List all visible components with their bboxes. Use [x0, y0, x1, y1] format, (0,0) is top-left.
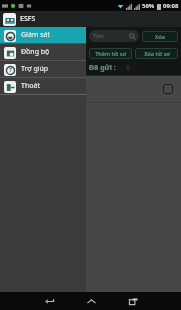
button[interactable]: Back	[41, 293, 57, 309]
button[interactable]: Recents	[125, 293, 141, 309]
staticText: Xóa hồ sơ	[144, 50, 170, 57]
staticText: ?	[9, 66, 12, 74]
button[interactable]: Xóa	[142, 31, 178, 42]
button[interactable]: Đồng bộ	[0, 44, 86, 60]
staticText: Tìm	[93, 32, 104, 40]
button[interactable]: Xóa hồ sơ	[135, 48, 178, 59]
staticText: Giám sát	[21, 30, 51, 40]
button[interactable]: Open navigation drawer	[3, 13, 16, 26]
button[interactable]: ?	[0, 61, 86, 77]
staticText: Trợ giúp	[21, 64, 49, 74]
button[interactable]: Select item	[0, 76, 181, 102]
button[interactable]: Tìm	[89, 30, 139, 42]
button[interactable]: Home	[83, 293, 99, 309]
staticText: 0	[126, 63, 131, 73]
staticText: Thêm hồ sơ	[95, 50, 126, 57]
staticText: 56%	[142, 2, 155, 10]
button[interactable]: Giám sát	[0, 27, 86, 43]
staticText: 09:08	[163, 2, 179, 10]
button[interactable]: Select item	[163, 84, 173, 94]
button[interactable]: Thêm hồ sơ	[89, 48, 132, 59]
staticText: ESFS	[20, 14, 36, 24]
staticText: Đồng bộ	[21, 47, 50, 57]
staticText: Đã gửi :	[89, 63, 116, 73]
staticText: Xóa	[155, 33, 165, 40]
button[interactable]: Thoát	[0, 78, 86, 94]
staticText: Thoát	[21, 81, 40, 91]
